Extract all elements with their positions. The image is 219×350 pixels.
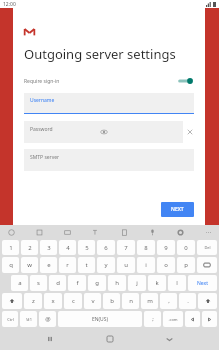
button[interactable]: 3 xyxy=(40,240,57,255)
button[interactable]: m xyxy=(141,293,158,309)
button[interactable]: 4 xyxy=(59,240,76,255)
button[interactable]: Clipboard xyxy=(119,227,129,237)
button[interactable]: w xyxy=(21,257,38,273)
button[interactable]: h xyxy=(108,275,126,291)
staticText: 9 xyxy=(164,244,168,252)
button[interactable]: 9 xyxy=(157,240,175,255)
button[interactable]: Move left xyxy=(185,311,200,327)
button[interactable]: n xyxy=(122,293,139,309)
button[interactable]: Next xyxy=(188,275,217,291)
button[interactable]: 5 xyxy=(78,240,95,255)
button[interactable]: Shift xyxy=(2,293,22,309)
button[interactable]: i xyxy=(137,257,155,273)
staticText: @ xyxy=(45,315,51,323)
staticText: w xyxy=(27,261,32,269)
button[interactable]: 0 xyxy=(177,240,195,255)
button[interactable]: y xyxy=(97,257,115,273)
staticText: . xyxy=(187,297,189,305)
staticText: n xyxy=(129,297,133,305)
staticText: Password xyxy=(30,126,53,133)
button[interactable]: 6 xyxy=(97,240,115,255)
button[interactable]: Del xyxy=(197,240,217,255)
button[interactable]: @ xyxy=(39,311,56,327)
staticText: !#1 xyxy=(26,317,32,322)
staticText: b xyxy=(110,297,114,305)
button[interactable]: 2 xyxy=(21,240,38,255)
button[interactable]: EN(US) xyxy=(58,311,142,327)
staticText: 8 xyxy=(144,244,148,252)
button[interactable]: ; xyxy=(144,311,161,327)
staticText: Del xyxy=(204,245,211,250)
other: Show password xyxy=(100,128,108,136)
button[interactable]: Require sign-in xyxy=(24,75,194,87)
button[interactable]: 1 xyxy=(2,240,19,255)
button[interactable]: !#1 xyxy=(20,311,37,327)
button[interactable]: j xyxy=(128,275,146,291)
button[interactable]: Backspace xyxy=(197,257,217,273)
staticText: 12:00 xyxy=(3,1,16,8)
button[interactable]: a xyxy=(11,275,28,291)
button[interactable]: p xyxy=(177,257,195,273)
button[interactable]: k xyxy=(148,275,166,291)
button[interactable]: r xyxy=(59,257,76,273)
button[interactable]: t xyxy=(78,257,95,273)
staticText: y xyxy=(104,261,108,269)
staticText: NEXT xyxy=(171,206,184,213)
button[interactable]: b xyxy=(103,293,120,309)
staticText: Outgoing server settings xyxy=(24,45,176,63)
button[interactable]: Clear xyxy=(186,128,194,136)
button[interactable]: Home xyxy=(100,329,120,349)
staticText: 4 xyxy=(66,244,70,252)
button[interactable]: Password xyxy=(24,121,183,143)
button[interactable]: .com xyxy=(163,311,183,327)
button[interactable]: . xyxy=(179,293,196,309)
button[interactable]: x xyxy=(44,293,62,309)
button[interactable]: Shift xyxy=(198,293,217,309)
button[interactable]: Username xyxy=(24,93,194,114)
staticText: k xyxy=(155,279,159,287)
button[interactable]: 7 xyxy=(117,240,135,255)
button[interactable]: Recent apps xyxy=(40,329,60,349)
staticText: 0 xyxy=(184,244,188,252)
button[interactable]: SMTP server xyxy=(24,149,194,171)
staticText: z xyxy=(32,297,35,305)
button[interactable]: e xyxy=(40,257,57,273)
button[interactable]: f xyxy=(68,275,86,291)
button[interactable]: Settings xyxy=(175,227,185,237)
button[interactable]: o xyxy=(157,257,175,273)
button[interactable]: q xyxy=(2,257,19,273)
staticText: p xyxy=(184,261,188,269)
button[interactable]: u xyxy=(117,257,135,273)
staticText: q xyxy=(9,261,13,269)
button[interactable]: Handwriting xyxy=(90,227,100,237)
button[interactable]: z xyxy=(24,293,42,309)
button[interactable]: Voice input xyxy=(147,227,157,237)
button[interactable]: Move right xyxy=(202,311,217,327)
button[interactable]: 8 xyxy=(137,240,155,255)
staticText: d xyxy=(56,279,60,287)
staticText: ; xyxy=(152,315,154,323)
staticText: 3 xyxy=(47,244,51,252)
button[interactable]: Ctrl xyxy=(2,311,18,327)
button[interactable]: s xyxy=(30,275,47,291)
staticText: EN(US) xyxy=(92,316,108,323)
button[interactable]: More options xyxy=(203,227,213,237)
staticText: i xyxy=(145,261,147,269)
button[interactable]: c xyxy=(64,293,82,309)
button[interactable]: v xyxy=(84,293,101,309)
button[interactable]: d xyxy=(49,275,66,291)
staticText: r xyxy=(66,261,69,269)
button[interactable]: GIF xyxy=(62,227,72,237)
button[interactable]: l xyxy=(168,275,186,291)
staticText: u xyxy=(124,261,128,269)
button[interactable]: g xyxy=(88,275,106,291)
staticText: e xyxy=(47,261,51,269)
button[interactable]: Hide keyboard xyxy=(159,329,179,349)
staticText: 1 xyxy=(9,244,13,252)
button[interactable]: NEXT xyxy=(161,202,194,217)
staticText: .com xyxy=(168,317,178,322)
button[interactable]: , xyxy=(160,293,177,309)
button[interactable]: Emoji xyxy=(6,227,16,237)
staticText: 6 xyxy=(104,244,108,252)
button[interactable]: Stickers xyxy=(34,227,44,237)
